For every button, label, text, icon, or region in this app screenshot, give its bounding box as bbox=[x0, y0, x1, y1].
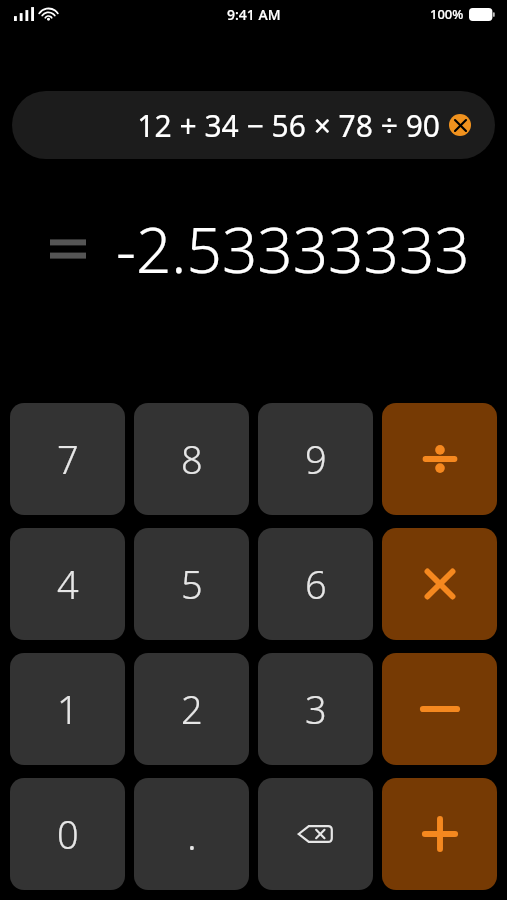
staticText: 6 bbox=[305, 558, 327, 610]
button[interactable]: 8 bbox=[134, 403, 249, 515]
staticText: 5 bbox=[181, 558, 203, 610]
button[interactable]: 3 bbox=[258, 653, 373, 765]
staticText: 9:41 AM bbox=[227, 5, 281, 24]
button[interactable]: 5 bbox=[134, 528, 249, 640]
staticText: 7 bbox=[57, 433, 79, 485]
button[interactable]: Backspace bbox=[258, 778, 373, 890]
button[interactable]: Divide bbox=[382, 403, 497, 515]
button[interactable]: 9 bbox=[258, 403, 373, 515]
staticText: 0 bbox=[57, 808, 79, 860]
button[interactable]: 2 bbox=[134, 653, 249, 765]
staticText: 2 bbox=[181, 683, 203, 735]
button[interactable]: 0 bbox=[10, 778, 125, 890]
button[interactable]: 1 bbox=[10, 653, 125, 765]
staticText: 9 bbox=[305, 433, 327, 485]
button[interactable]: 6 bbox=[258, 528, 373, 640]
staticText: -2.53333333 bbox=[116, 207, 470, 291]
button[interactable]: Subtract bbox=[382, 653, 497, 765]
staticText: 12 + 34 − 56 × 78 ÷ 90 bbox=[32, 105, 440, 146]
button[interactable]: Multiply bbox=[382, 528, 497, 640]
staticText: 3 bbox=[305, 683, 327, 735]
staticText: 100% bbox=[430, 5, 464, 23]
staticText: 8 bbox=[181, 433, 203, 485]
button[interactable]: . bbox=[134, 778, 249, 890]
button[interactable]: 4 bbox=[10, 528, 125, 640]
button[interactable]: Add bbox=[382, 778, 497, 890]
button[interactable]: 12 + 34 − 56 × 78 ÷ 90 bbox=[12, 91, 495, 159]
button[interactable]: 7 bbox=[10, 403, 125, 515]
staticText: 4 bbox=[57, 558, 79, 610]
staticText: . bbox=[187, 807, 197, 861]
button[interactable]: Clear expression bbox=[449, 114, 471, 136]
staticText: 1 bbox=[57, 683, 79, 735]
